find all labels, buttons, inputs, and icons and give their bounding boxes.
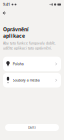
staticText: Poloha [13,62,24,66]
staticText: aplikace [3,32,25,39]
button[interactable]: Back [0,9,8,17]
staticText: Soubory a média [13,78,40,83]
staticText: udělte aplikaci tato oprávnění. [3,46,52,50]
button[interactable]: Další [5,124,59,131]
staticText: Další [28,125,36,130]
staticText: 9:41 [3,2,10,7]
staticText: Oprávnění [3,26,29,33]
staticText: Aby tyto funkce fungovaly dobře, [3,41,56,45]
button[interactable]: Poloha [3,57,61,71]
button[interactable]: Soubory a média [3,73,61,87]
